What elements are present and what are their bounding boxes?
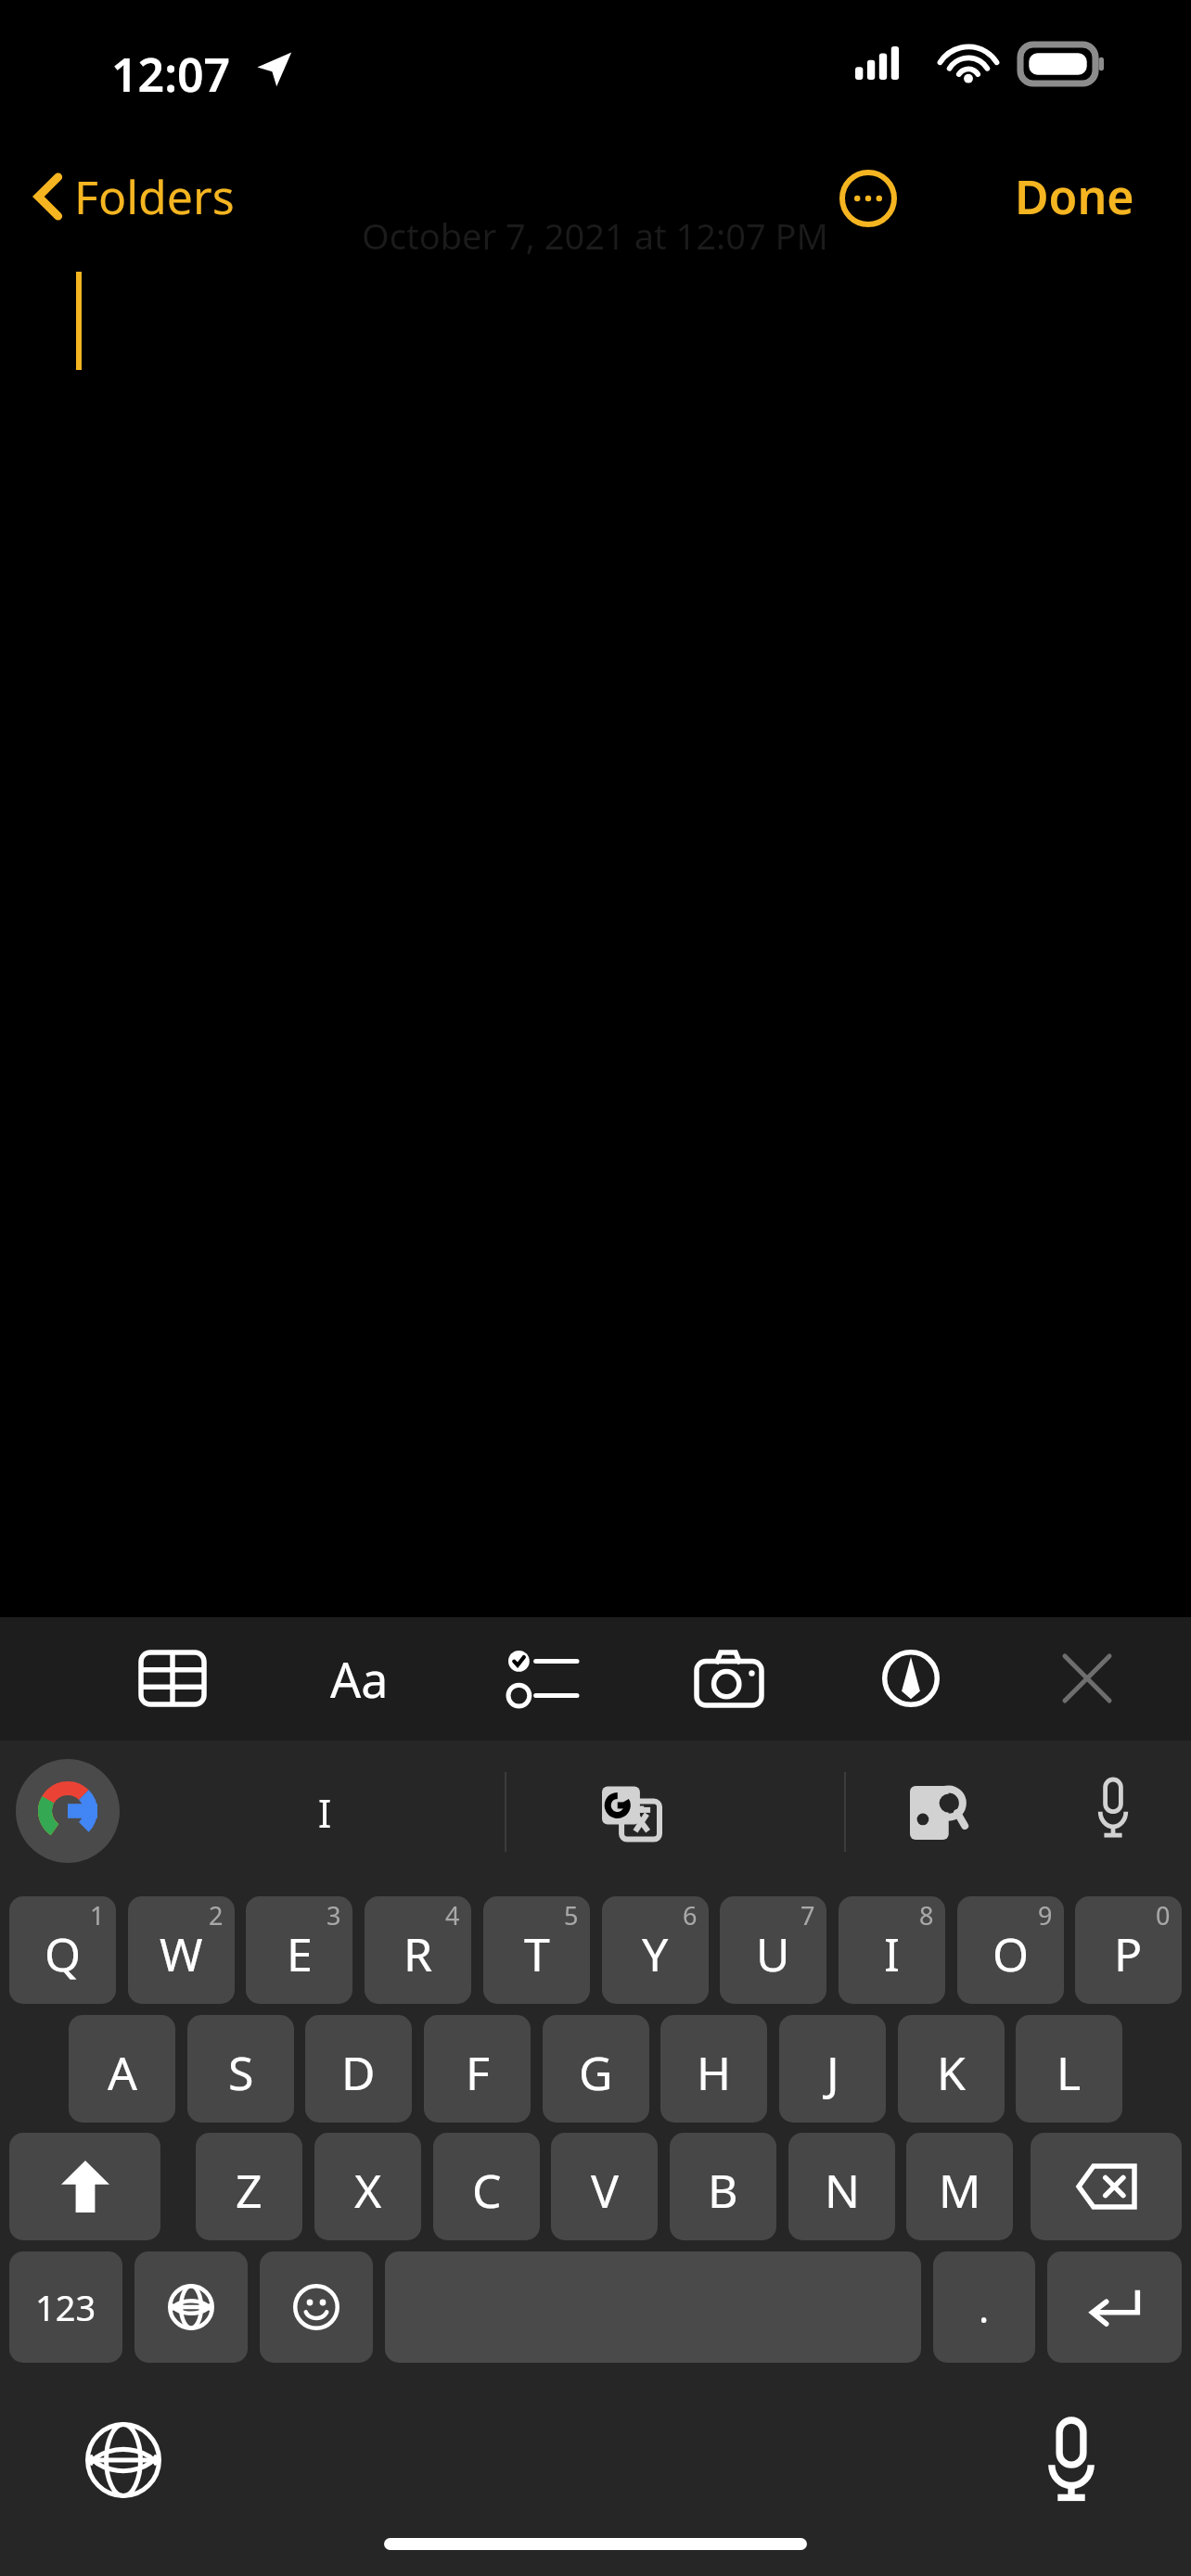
staticText: Q	[45, 1922, 82, 1985]
staticText: D	[341, 2041, 376, 2104]
staticText: S	[228, 2041, 254, 2104]
staticText: V	[591, 2159, 619, 2222]
staticText: 9	[1038, 1898, 1053, 1932]
button[interactable]: Done	[1002, 156, 1147, 237]
staticText: Folders	[74, 165, 235, 228]
staticText: 12:07	[111, 43, 231, 106]
staticText: .	[979, 2281, 990, 2334]
button[interactable]: O	[957, 1896, 1064, 2004]
staticText: 4	[445, 1898, 460, 1932]
staticText: 1	[90, 1898, 105, 1932]
staticText: October 7, 2021 at 12:07 PM	[362, 211, 829, 260]
button[interactable]: Voice input	[1013, 2402, 1130, 2519]
button[interactable]: Change language	[134, 2251, 248, 2363]
staticText: I	[318, 1786, 332, 1839]
staticText: L	[1057, 2041, 1082, 2104]
button[interactable]: P	[1075, 1896, 1182, 2004]
button[interactable]: D	[305, 2015, 412, 2123]
staticText: H	[697, 2041, 732, 2104]
staticText: A	[108, 2041, 137, 2104]
button[interactable]: Format text	[303, 1623, 415, 1734]
button[interactable]: 123	[9, 2251, 122, 2363]
button[interactable]: J	[779, 2015, 886, 2123]
button[interactable]: Shift	[9, 2133, 160, 2240]
staticText: 7	[800, 1898, 815, 1932]
button[interactable]: N	[788, 2133, 895, 2240]
button[interactable]: K	[898, 2015, 1005, 2123]
button[interactable]: V	[551, 2133, 658, 2240]
button[interactable]: Translate	[575, 1757, 686, 1868]
button[interactable]: T	[483, 1896, 590, 2004]
staticText: 5	[564, 1898, 579, 1932]
staticText: C	[472, 2159, 502, 2222]
staticText: P	[1114, 1922, 1143, 1985]
button[interactable]: Q	[9, 1896, 116, 2004]
button[interactable]: M	[906, 2133, 1013, 2240]
button[interactable]: Google search	[16, 1759, 120, 1863]
button[interactable]: H	[660, 2015, 767, 2123]
staticText: E	[287, 1922, 313, 1985]
staticText: R	[403, 1922, 433, 1985]
button[interactable]: Voice input	[1062, 1757, 1164, 1859]
staticText: 3	[327, 1898, 341, 1932]
button[interactable]: C	[433, 2133, 540, 2240]
button[interactable]: More options	[826, 156, 911, 241]
button[interactable]: Emoji	[260, 2251, 373, 2363]
button[interactable]: B	[670, 2133, 776, 2240]
staticText: M	[939, 2159, 981, 2222]
staticText: W	[160, 1922, 203, 1985]
button[interactable]: Close keyboard	[1031, 1623, 1143, 1734]
staticText: Aa	[330, 1646, 389, 1712]
button[interactable]: I	[186, 1752, 464, 1872]
staticText: X	[354, 2159, 382, 2222]
staticText: N	[825, 2159, 860, 2222]
button[interactable]: A	[69, 2015, 175, 2123]
button[interactable]: E	[246, 1896, 352, 2004]
button[interactable]: Y	[602, 1896, 709, 2004]
button[interactable]: Enter	[1047, 2251, 1182, 2363]
button[interactable]: R	[365, 1896, 471, 2004]
button[interactable]: Table	[117, 1623, 228, 1734]
button[interactable]: U	[720, 1896, 826, 2004]
staticText: I	[884, 1922, 900, 1985]
button[interactable]: .	[933, 2251, 1035, 2363]
staticText: Y	[642, 1922, 669, 1985]
staticText: U	[756, 1922, 790, 1985]
button[interactable]: Camera	[673, 1623, 785, 1734]
staticText: G	[579, 2041, 613, 2104]
staticText: 0	[1156, 1898, 1171, 1932]
staticText: 6	[683, 1898, 698, 1932]
button[interactable]: G	[543, 2015, 649, 2123]
staticText: K	[937, 2041, 966, 2104]
button[interactable]: S	[187, 2015, 294, 2123]
staticText: Done	[1015, 165, 1134, 228]
button[interactable]	[0, 272, 1191, 1490]
button[interactable]: Folders	[22, 156, 248, 237]
button[interactable]: Change keyboard	[65, 2402, 182, 2519]
staticText: 2	[209, 1898, 224, 1932]
button[interactable]: Markup	[855, 1623, 967, 1734]
button[interactable]: X	[314, 2133, 421, 2240]
button[interactable]: Space	[385, 2251, 921, 2363]
button[interactable]: W	[128, 1896, 235, 2004]
staticText: B	[708, 2159, 738, 2222]
staticText: O	[992, 1922, 1030, 1985]
staticText: Z	[236, 2159, 263, 2222]
staticText: 8	[919, 1898, 934, 1932]
staticText: J	[826, 2041, 839, 2104]
button[interactable]: Checklist	[487, 1623, 598, 1734]
staticText: F	[466, 2041, 490, 2104]
staticText: 123	[35, 2283, 96, 2331]
button[interactable]: Image search	[881, 1757, 992, 1868]
button[interactable]: F	[424, 2015, 531, 2123]
button[interactable]: L	[1016, 2015, 1122, 2123]
staticText: T	[524, 1922, 550, 1985]
button[interactable]: I	[839, 1896, 945, 2004]
button[interactable]: Z	[196, 2133, 302, 2240]
button[interactable]: Backspace	[1031, 2133, 1182, 2240]
